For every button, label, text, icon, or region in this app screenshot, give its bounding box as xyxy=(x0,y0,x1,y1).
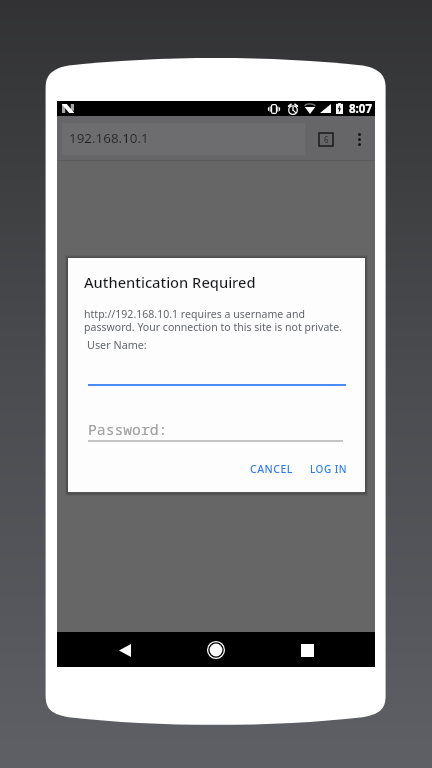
staticText: Password: xyxy=(88,419,168,439)
button[interactable]: Home xyxy=(197,633,234,667)
staticText: LOG IN xyxy=(310,462,347,476)
staticText: 8:07 xyxy=(349,101,372,116)
staticText: http://192.168.10.1 requires a username … xyxy=(84,307,342,334)
button[interactable]: Password field xyxy=(88,413,343,440)
staticText: 192.168.10.1 xyxy=(69,129,149,147)
button[interactable]: Recent apps xyxy=(289,633,326,667)
staticText: 6 xyxy=(324,134,329,145)
button[interactable]: More options xyxy=(351,129,368,149)
button[interactable]: CANCEL xyxy=(243,457,300,481)
staticText: Authentication Required xyxy=(84,272,256,292)
button[interactable]: Open tabs, 6 xyxy=(319,133,333,146)
staticText: User Name: xyxy=(87,337,147,352)
button[interactable]: LOG IN xyxy=(303,457,365,481)
staticText: CANCEL xyxy=(250,462,293,476)
button[interactable]: 192.168.10.1 xyxy=(62,123,305,155)
button[interactable]: Back xyxy=(106,633,143,667)
button[interactable]: User Name field xyxy=(88,354,346,385)
